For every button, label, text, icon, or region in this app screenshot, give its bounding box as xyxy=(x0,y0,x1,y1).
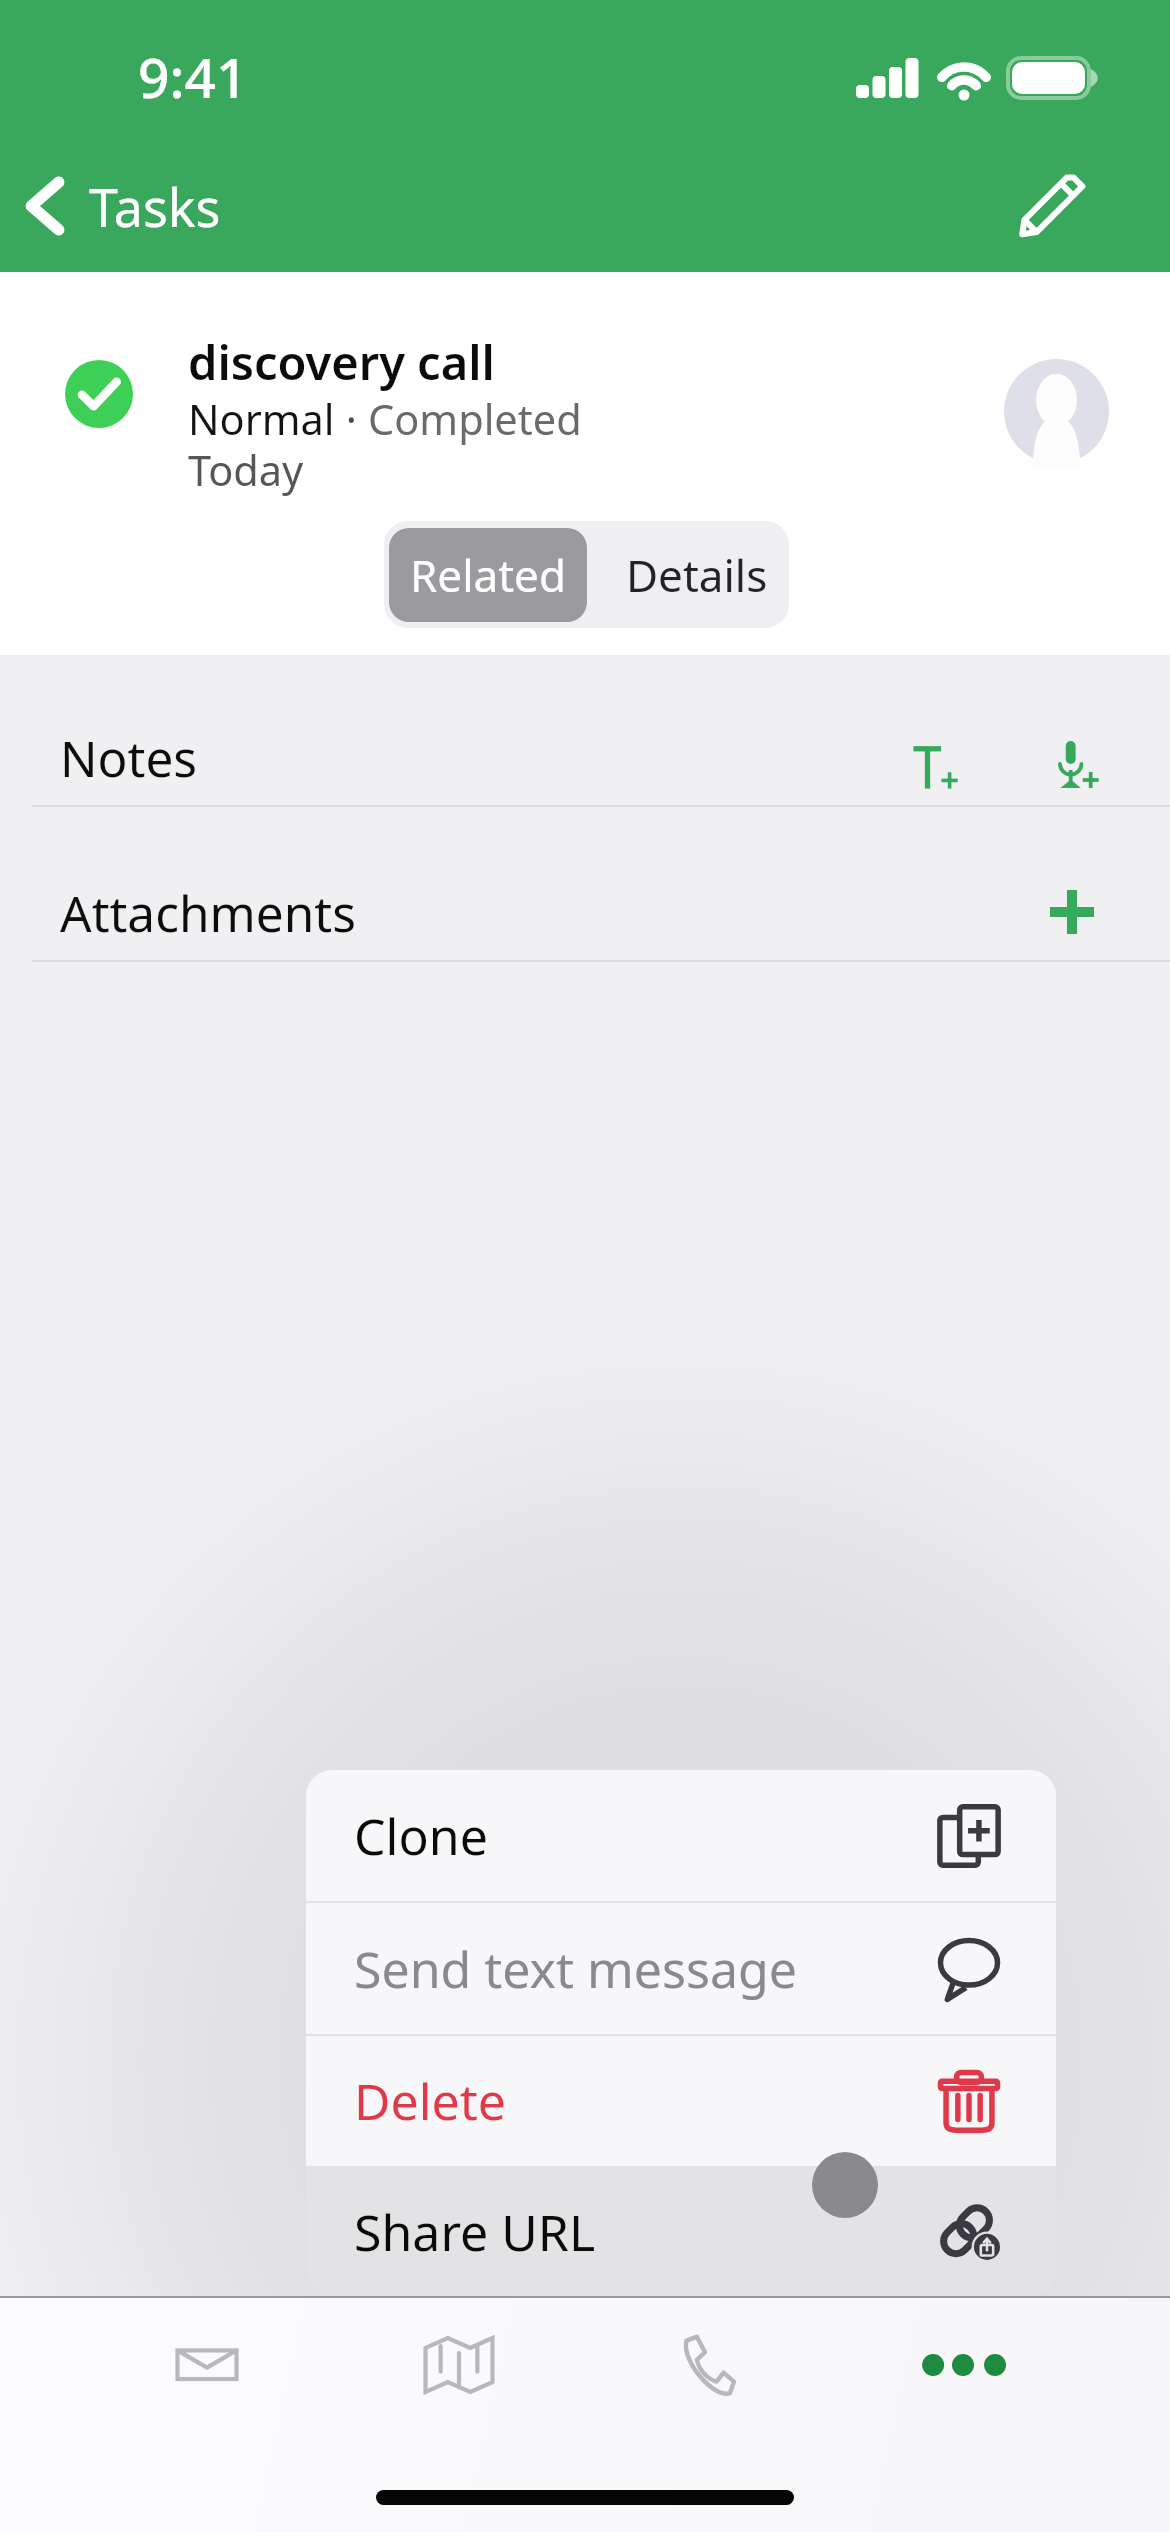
staticText: · xyxy=(335,391,368,448)
button[interactable]: Delete xyxy=(306,2036,1056,2166)
button[interactable]: Clone xyxy=(306,1770,1056,1901)
staticText: Send text message xyxy=(354,1935,797,2003)
button[interactable]: Add text note xyxy=(890,717,980,817)
button[interactable]: Mail xyxy=(137,2300,277,2430)
button[interactable]: More xyxy=(893,2300,1033,2430)
button[interactable]: Send text message xyxy=(306,1903,1056,2034)
staticText: discovery call xyxy=(188,330,495,394)
staticText: Notes xyxy=(60,724,198,791)
staticText: Tasks xyxy=(89,171,221,242)
button[interactable]: Call xyxy=(635,2300,775,2430)
button[interactable]: Add attachment xyxy=(1022,862,1122,962)
button[interactable]: Details xyxy=(592,521,789,628)
staticText: Clone xyxy=(354,1802,488,1870)
button[interactable]: Attachments xyxy=(0,845,1170,962)
staticText: Details xyxy=(626,545,768,605)
staticText: Attachments xyxy=(60,879,356,946)
staticText: Share URL xyxy=(354,2198,596,2266)
button[interactable]: Add voice note xyxy=(1031,715,1121,815)
button[interactable]: Tasks xyxy=(8,158,239,254)
button[interactable]: Map xyxy=(389,2300,529,2430)
button[interactable]: Completed xyxy=(65,360,133,428)
staticText: Completed xyxy=(368,391,582,448)
button[interactable]: Related xyxy=(389,528,587,622)
button[interactable]: Contact avatar xyxy=(1004,359,1109,464)
staticText: 9:41 xyxy=(138,39,248,114)
staticText: Related xyxy=(410,545,566,605)
staticText: Today xyxy=(188,442,304,499)
staticText: Normal xyxy=(188,391,335,448)
button[interactable]: Edit xyxy=(1000,158,1100,258)
staticText: Delete xyxy=(354,2067,507,2135)
button[interactable]: Notes xyxy=(0,690,1170,807)
button[interactable]: Share URL xyxy=(306,2168,1056,2296)
